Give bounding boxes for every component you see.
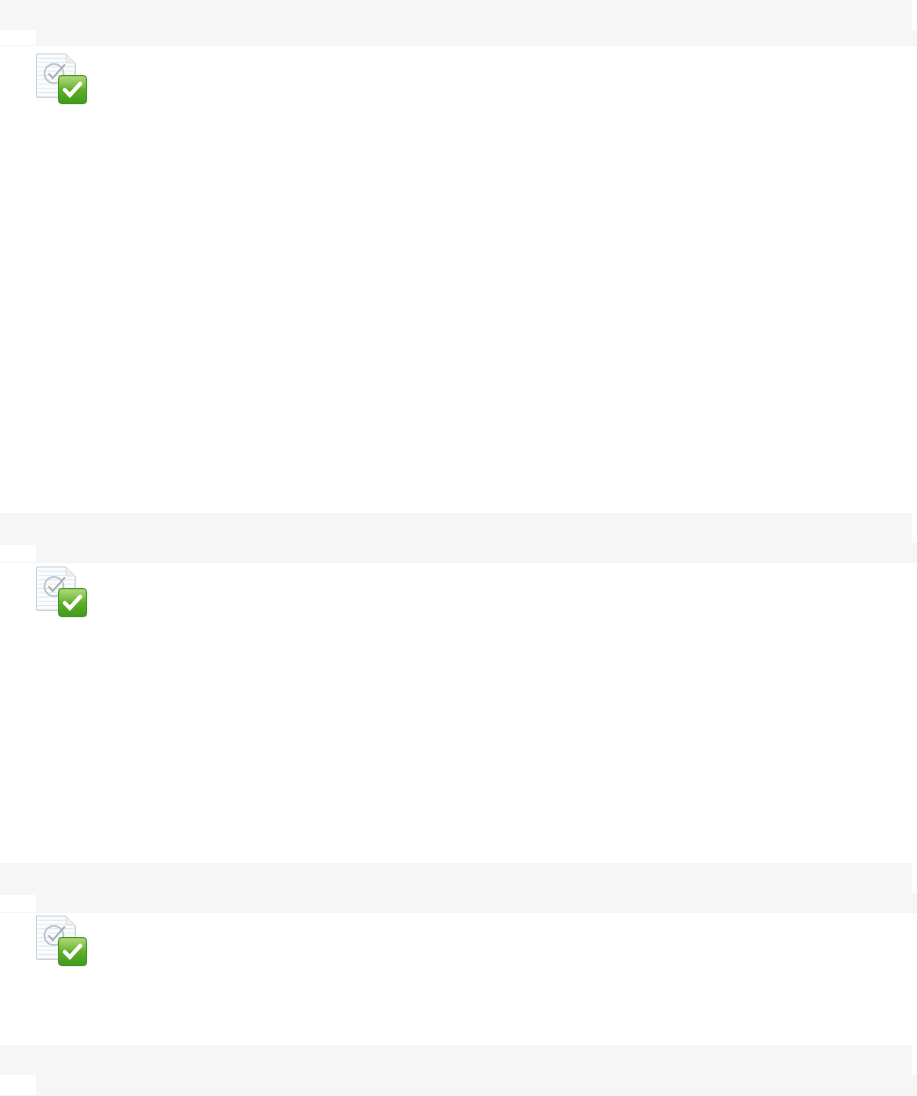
button[interactable]: Survey document, approved xyxy=(36,915,87,966)
button[interactable]: Survey document, approved xyxy=(36,53,87,104)
button[interactable]: Survey document, approved xyxy=(36,566,87,617)
